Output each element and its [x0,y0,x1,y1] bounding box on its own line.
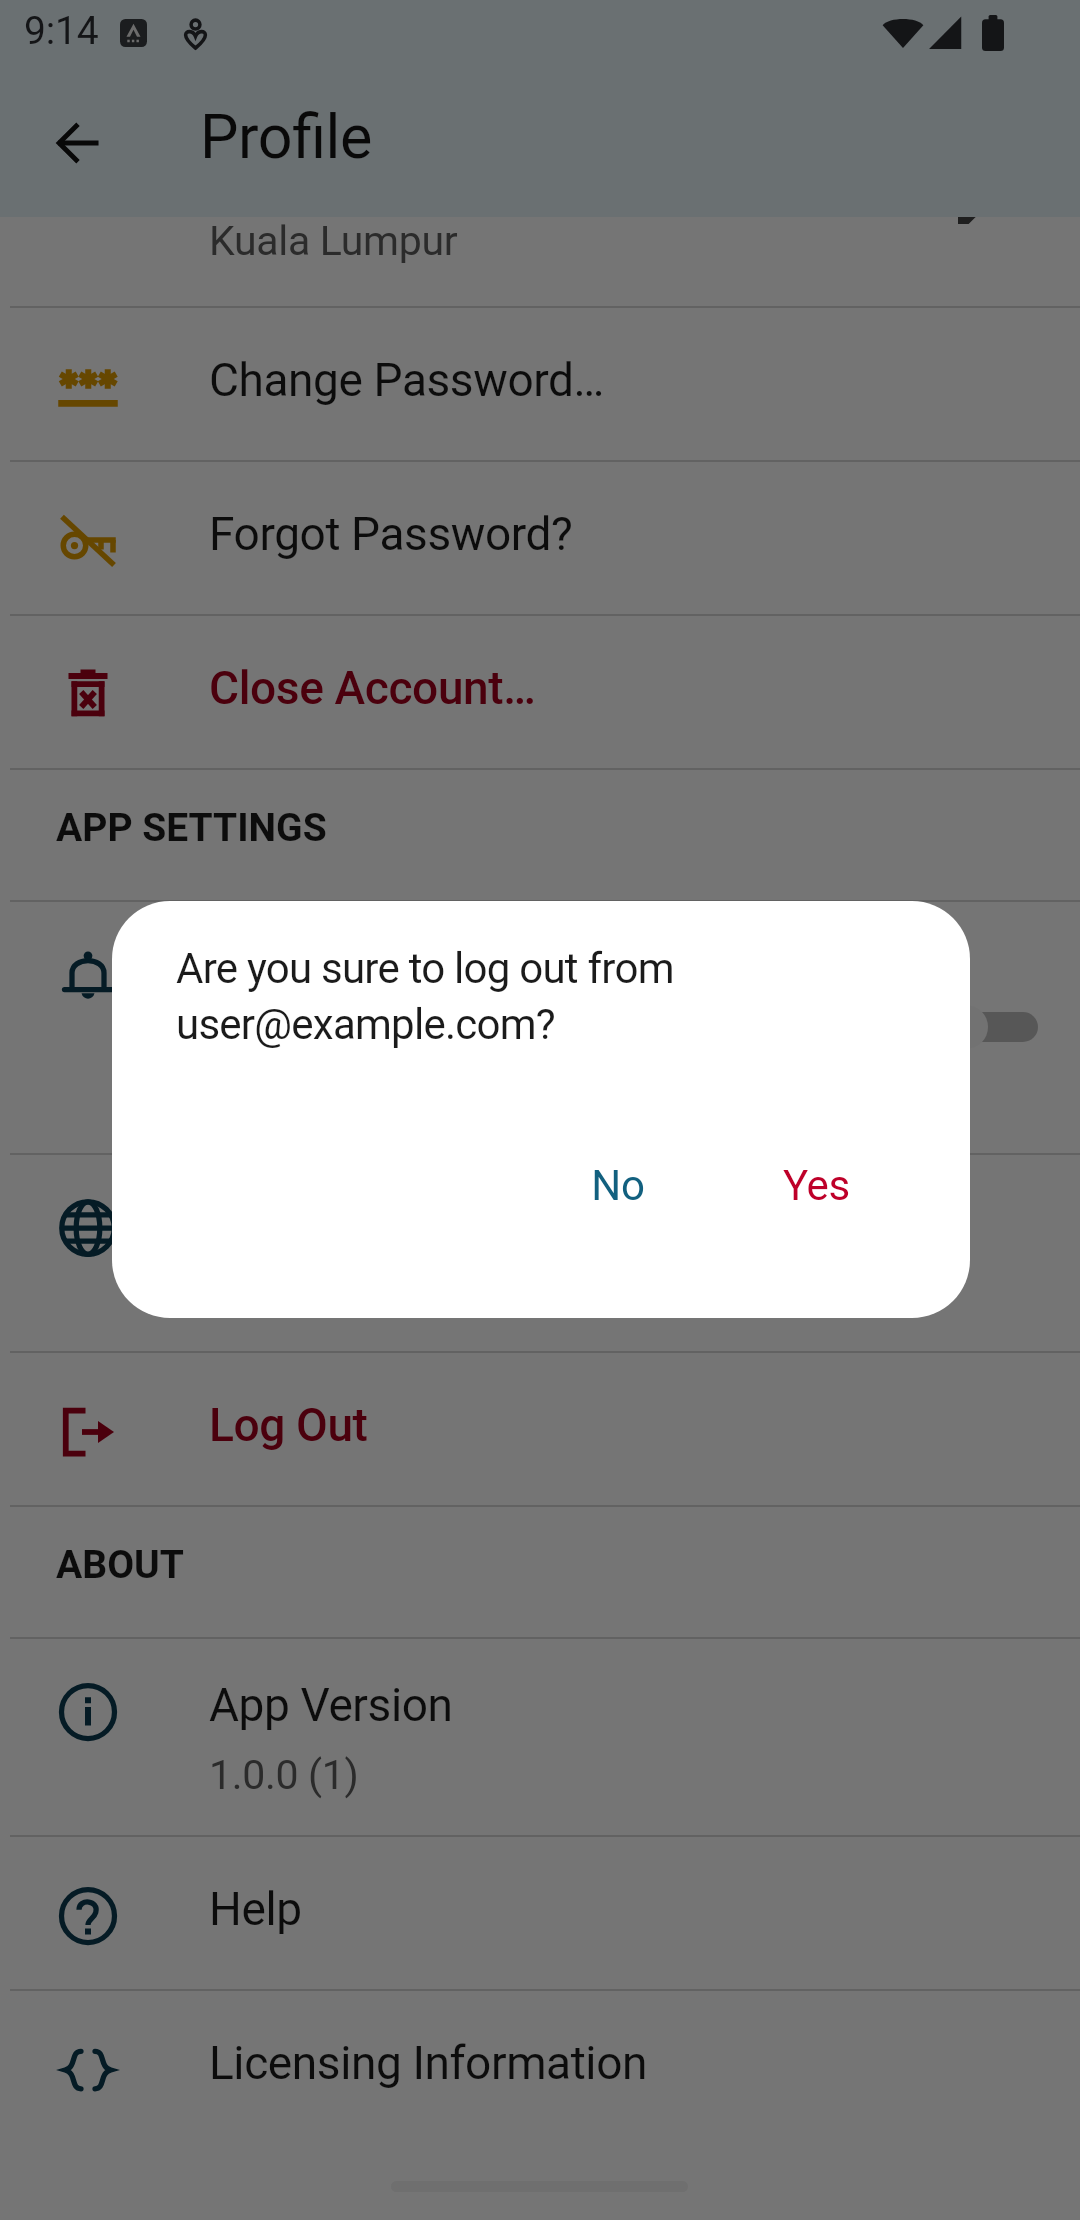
staticText: 1.0.0 (1) [209,1751,969,1799]
button[interactable]: Forgot Password? [0,462,1080,614]
button[interactable]: Yes [736,1132,897,1238]
staticText: Licensing Information [209,2036,647,2090]
staticText: Are you sure to log out from user@exampl… [176,944,736,1049]
button[interactable]: Licensing Information [0,1991,1080,2143]
button[interactable]: Close Account… [0,616,1080,768]
staticText: Profile [200,101,372,172]
button[interactable]: No [537,1132,698,1238]
staticText: 9:14 [24,8,99,54]
staticText: Address [209,156,376,210]
staticText: Forgot Password? [209,507,573,561]
button[interactable]: App Version [0,1639,1080,1835]
staticText: ABOUT [56,1542,184,1588]
button[interactable]: Back [30,95,126,191]
staticText: Log Out [209,1398,368,1452]
staticText: Change Password… [209,353,604,407]
staticText: Close Account… [209,661,536,715]
staticText: No [591,1161,645,1210]
staticText: Receive reminders and updates about your… [209,1014,809,1116]
staticText: App Version [209,1678,453,1732]
staticText: Notifications [209,941,466,995]
button[interactable]: Help [0,1837,1080,1989]
staticText: Help [209,1882,302,1936]
staticText: English [209,1267,969,1315]
button[interactable]: Notifications [0,902,1080,1153]
button[interactable]: Log Out [0,1353,1080,1505]
staticText: APP SETTINGS [56,805,327,851]
button[interactable]: Language [0,1155,1080,1351]
button[interactable]: Change Password… [0,308,1080,460]
staticText: Yes [783,1161,850,1210]
staticText: Kuala Lumpur [209,217,458,265]
